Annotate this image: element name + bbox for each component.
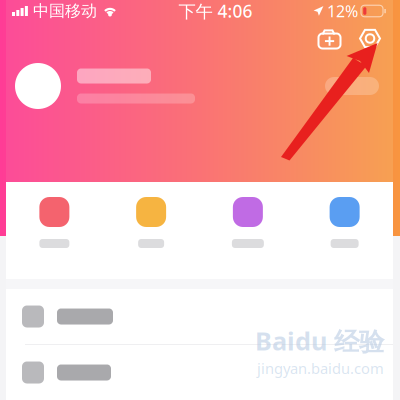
staticText: jingyan.baidu.com xyxy=(257,358,384,378)
button[interactable] xyxy=(6,55,393,119)
staticText: 中国移动 xyxy=(33,1,97,21)
button[interactable]: New post xyxy=(317,25,343,51)
button[interactable] xyxy=(6,289,393,344)
button[interactable] xyxy=(296,197,393,248)
button[interactable]: Scan xyxy=(357,25,383,51)
button[interactable] xyxy=(6,197,103,248)
staticText: 12% xyxy=(327,0,358,22)
staticText: Baidu 经验 xyxy=(255,324,384,358)
button[interactable] xyxy=(199,197,296,248)
button[interactable] xyxy=(6,345,393,400)
staticText: 下午 4:06 xyxy=(178,0,252,22)
button[interactable] xyxy=(103,197,200,248)
